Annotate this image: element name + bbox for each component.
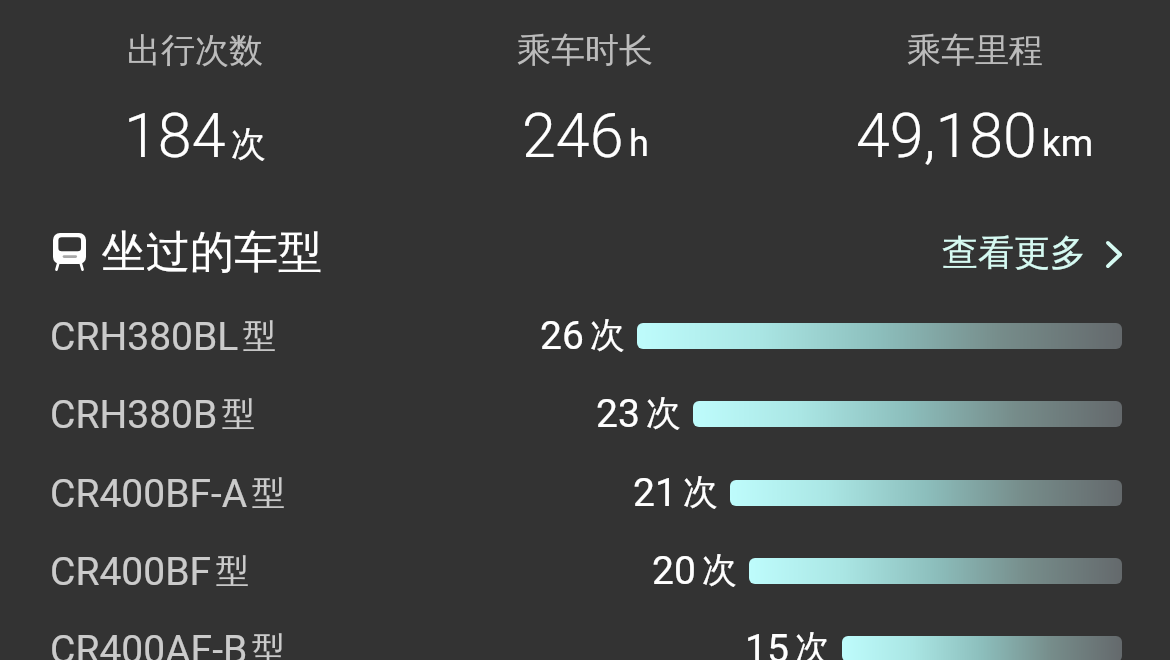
button[interactable]: CRH380B — [0, 375, 1170, 453]
staticText: 20 — [652, 548, 696, 594]
staticText: 次 — [646, 391, 681, 435]
staticText: 21 — [633, 470, 677, 516]
staticText: 26 — [540, 313, 584, 359]
button[interactable]: CRH380BL — [0, 297, 1170, 375]
button[interactable]: 查看更多 — [942, 230, 1122, 275]
staticText: km — [1042, 122, 1094, 165]
staticText: 查看更多 — [942, 230, 1086, 275]
staticText: 出行次数 — [127, 29, 263, 72]
staticText: 型 — [216, 550, 249, 592]
staticText: 15 — [745, 626, 789, 660]
staticText: 次 — [590, 313, 625, 357]
staticText: CRH380BL — [50, 314, 239, 360]
button[interactable]: CR400BF — [0, 532, 1170, 610]
staticText: 乘车时长 — [517, 29, 653, 72]
staticText: 49,180 — [856, 100, 1037, 171]
staticText: CR400BF — [50, 549, 212, 595]
button[interactable]: CR400AF-B — [0, 610, 1170, 660]
staticText: 次 — [795, 626, 830, 660]
button[interactable]: CR400BF-A — [0, 454, 1170, 532]
staticText: CR400AF-B — [50, 627, 248, 660]
staticText: 坐过的车型 — [102, 225, 322, 280]
staticText: 23 — [596, 391, 640, 437]
staticText: 型 — [243, 315, 276, 357]
staticText: 次 — [702, 548, 737, 592]
staticText: CRH380B — [50, 392, 218, 438]
other: View more — [1106, 241, 1122, 268]
staticText: 型 — [252, 472, 285, 514]
staticText: 次 — [231, 122, 266, 166]
staticText: 246 — [522, 100, 624, 171]
staticText: 型 — [252, 628, 285, 660]
staticText: 次 — [683, 470, 718, 514]
staticText: CR400BF-A — [50, 471, 248, 517]
staticText: h — [629, 123, 649, 165]
staticText: 乘车里程 — [907, 29, 1043, 72]
staticText: 型 — [222, 393, 255, 435]
staticText: 184 — [124, 100, 226, 171]
